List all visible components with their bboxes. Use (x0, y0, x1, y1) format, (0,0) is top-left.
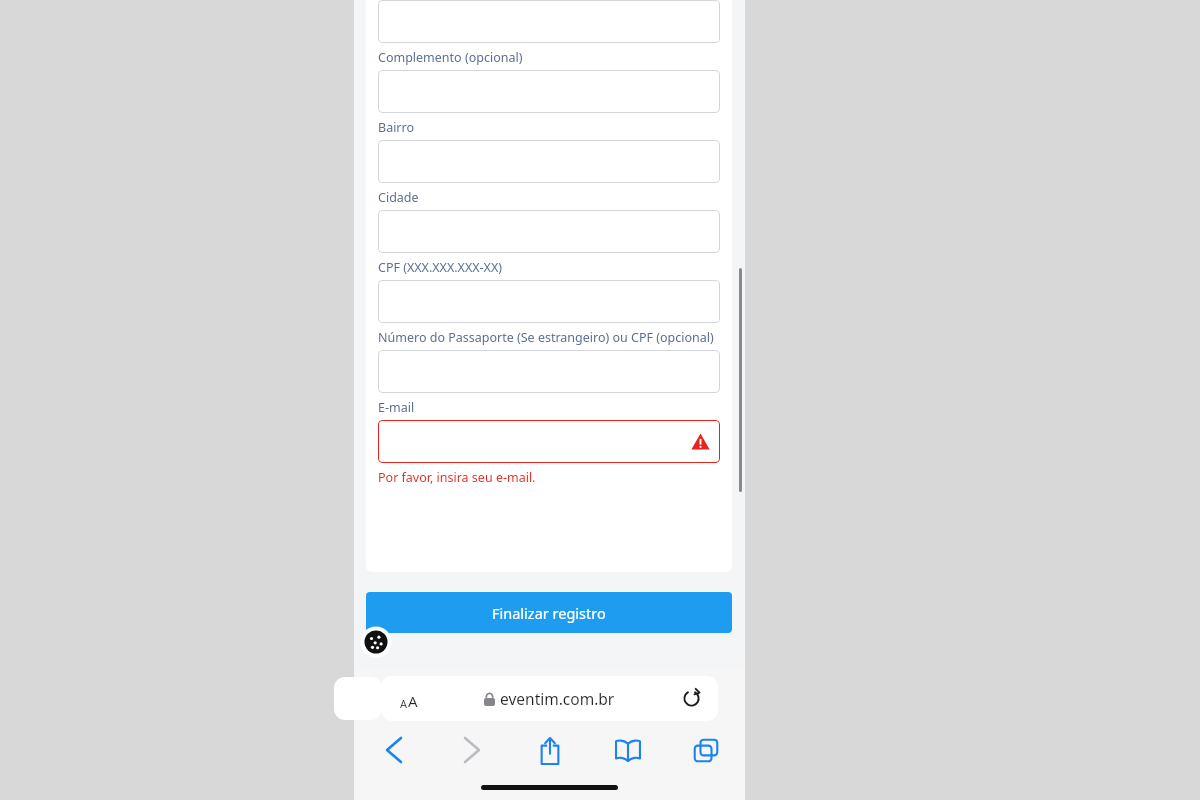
staticText: Por favor, insira seu e-mail. (378, 469, 536, 486)
button[interactable] (378, 350, 720, 393)
button[interactable]: Tabs (667, 728, 745, 772)
button[interactable]: Bookmarks (589, 728, 667, 772)
button[interactable]: Back (354, 728, 433, 772)
staticText: A (408, 691, 418, 711)
button[interactable] (378, 210, 720, 253)
staticText: Cidade (378, 189, 419, 206)
staticText: Bairro (378, 119, 415, 136)
staticText: A (400, 696, 408, 711)
button[interactable] (378, 280, 720, 323)
staticText: E-mail (378, 399, 415, 416)
button[interactable]: A (381, 676, 718, 721)
staticText: CPF (XXX.XXX.XXX-XX) (378, 259, 503, 276)
staticText: Número do Passaporte (Se estrangeiro) ou… (378, 329, 714, 346)
button[interactable] (378, 70, 720, 113)
button[interactable]: Forward (433, 728, 511, 772)
button[interactable]: Share (511, 728, 589, 772)
button[interactable] (378, 140, 720, 183)
button[interactable] (378, 0, 720, 43)
button[interactable]: Cookie settings (360, 626, 392, 658)
button[interactable]: Reload (681, 688, 702, 709)
staticText: Complemento (opcional) (378, 49, 523, 66)
staticText: eventim.com.br (500, 688, 615, 709)
button[interactable] (378, 420, 720, 463)
button[interactable]: Finalizar registro (366, 592, 732, 633)
staticText: Finalizar registro (492, 603, 606, 623)
